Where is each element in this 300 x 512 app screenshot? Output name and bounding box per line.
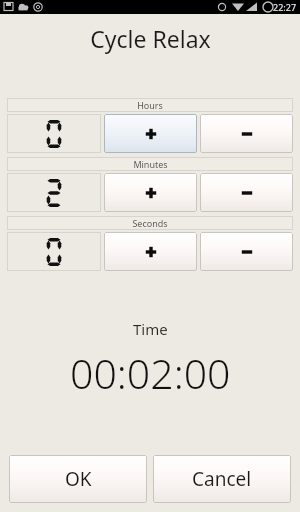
button[interactable]: Cancel	[153, 455, 291, 503]
staticText: Seconds	[132, 217, 168, 229]
staticText: Time	[133, 319, 168, 339]
button[interactable]: Decrease Minutes	[200, 173, 293, 212]
staticText: Minutes	[133, 158, 168, 170]
button[interactable]: Decrease Hours	[200, 114, 293, 153]
staticText: OK	[65, 466, 92, 492]
staticText: 00:02:00	[70, 345, 231, 401]
button[interactable]: Increase Seconds	[104, 232, 197, 271]
staticText: 22:27	[273, 1, 297, 13]
staticText: Hours	[137, 99, 163, 111]
button[interactable]: Increase Hours	[104, 114, 197, 153]
staticText: Cancel	[192, 466, 252, 492]
staticText: Cycle Relax	[90, 23, 211, 54]
button[interactable]: OK	[9, 455, 147, 503]
button[interactable]: Increase Minutes	[104, 173, 197, 212]
button[interactable]: Decrease Seconds	[200, 232, 293, 271]
